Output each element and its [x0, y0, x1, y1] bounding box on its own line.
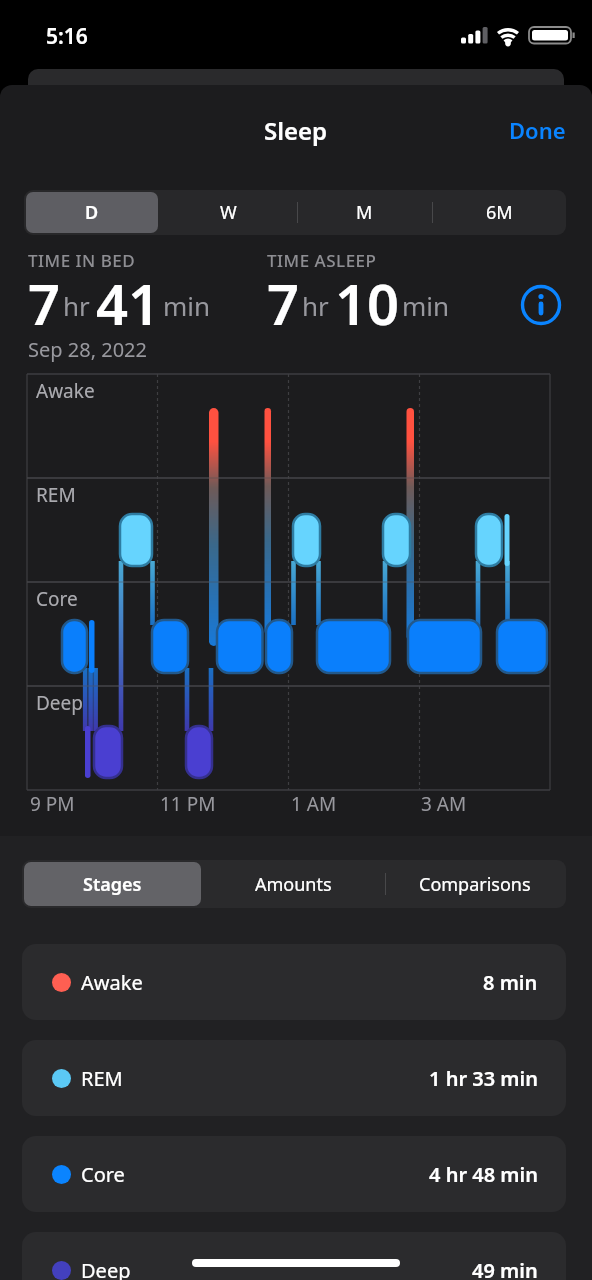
staticText: Comparisons	[419, 872, 531, 897]
button[interactable]: Comparisons	[384, 860, 566, 908]
staticText: 49 min	[472, 1257, 538, 1280]
staticText: W	[220, 200, 237, 225]
button[interactable]: Core	[22, 1136, 566, 1212]
staticText: min	[163, 288, 211, 323]
staticText: Awake	[81, 969, 143, 996]
staticText: Core	[81, 1161, 125, 1188]
staticText: REM	[36, 482, 76, 508]
staticText: 1 hr 33 min	[429, 1065, 538, 1092]
button[interactable]: W	[160, 190, 296, 235]
staticText: TIME ASLEEP	[267, 249, 377, 272]
staticText: 7	[267, 265, 300, 341]
staticText: 41	[96, 265, 161, 341]
staticText: REM	[81, 1065, 123, 1092]
staticText: 1 AM	[291, 791, 337, 817]
button[interactable]: Deep	[22, 1232, 566, 1280]
staticText: min	[402, 288, 450, 323]
staticText: Sleep	[264, 114, 328, 147]
button[interactable]: Amounts	[203, 860, 384, 908]
staticText: hr	[302, 288, 329, 323]
staticText: Awake	[36, 378, 95, 404]
staticText: Core	[36, 586, 78, 612]
staticText: Sep 28, 2022	[28, 336, 147, 363]
staticText: M	[356, 200, 373, 225]
button[interactable]: D	[24, 190, 160, 235]
staticText: Done	[509, 115, 566, 145]
staticText: TIME IN BED	[28, 249, 136, 272]
staticText: Stages	[83, 872, 142, 897]
staticText: 8 min	[483, 969, 538, 996]
staticText: 9 PM	[30, 791, 75, 817]
staticText: 5:16	[46, 22, 88, 51]
staticText: hr	[63, 288, 90, 323]
button[interactable]: M	[296, 190, 432, 235]
button[interactable]: Stages	[22, 860, 203, 908]
button[interactable]: 6M	[432, 190, 566, 235]
staticText: 3 AM	[421, 791, 467, 817]
button[interactable]: REM	[22, 1040, 566, 1116]
button[interactable]: Awake	[22, 944, 566, 1020]
staticText: 10	[335, 265, 400, 341]
staticText: 11 PM	[160, 791, 216, 817]
staticText: Deep	[36, 690, 83, 716]
staticText: D	[85, 200, 99, 225]
button[interactable]: Done	[509, 115, 566, 145]
staticText: 6M	[486, 200, 513, 225]
staticText: 7	[28, 265, 61, 341]
button[interactable]	[519, 283, 563, 327]
staticText: Deep	[81, 1257, 131, 1280]
staticText: 4 hr 48 min	[429, 1161, 538, 1188]
staticText: Amounts	[255, 872, 332, 897]
